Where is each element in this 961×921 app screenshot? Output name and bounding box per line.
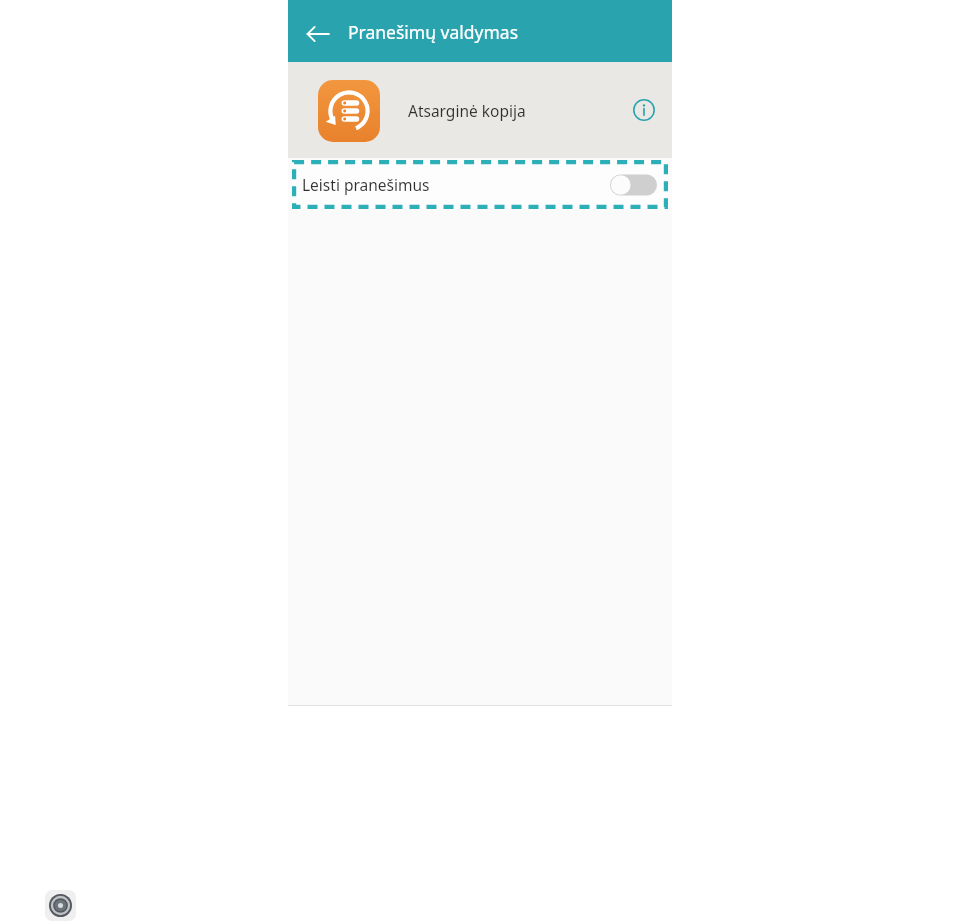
staticText: Leisti pranešimus xyxy=(302,174,430,195)
button[interactable]: Atsarginė kopija xyxy=(288,62,672,158)
button[interactable]: Leisti pranešimus xyxy=(292,160,668,209)
button[interactable]: Allow notifications toggle, off xyxy=(610,172,657,198)
staticText: Pranešimų valdymas xyxy=(348,20,519,44)
staticText: Atsarginė kopija xyxy=(408,100,526,121)
button[interactable]: Information xyxy=(626,92,662,128)
button[interactable]: Screen recorder xyxy=(45,890,76,921)
button[interactable]: Back xyxy=(300,16,336,52)
